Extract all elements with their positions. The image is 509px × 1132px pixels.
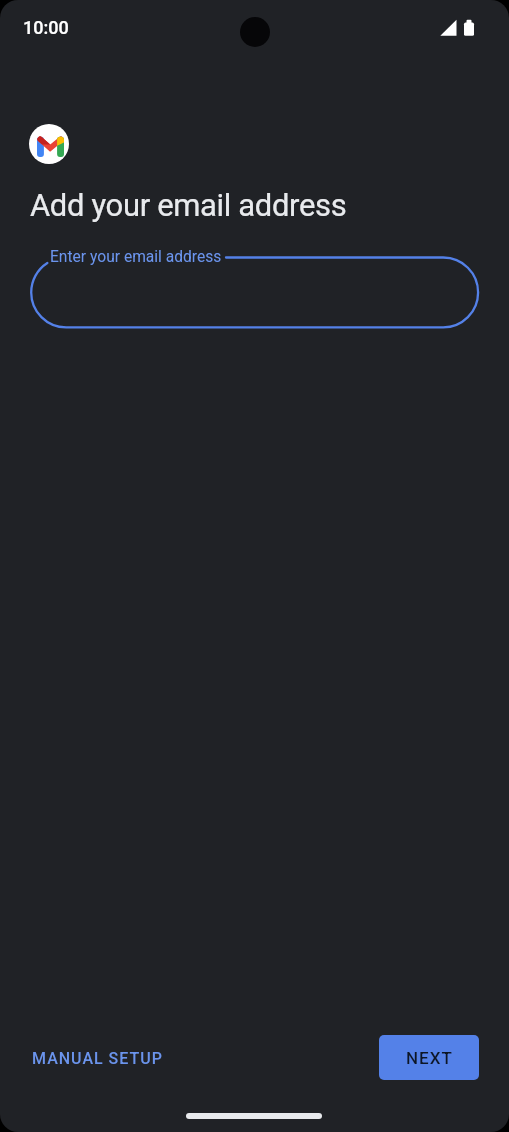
staticText: Enter your email address (50, 248, 222, 266)
other: Signal and battery status (436, 19, 480, 37)
staticText: Add your email address (30, 187, 347, 223)
button[interactable]: MANUAL SETUP (20, 1040, 175, 1077)
button[interactable]: NEXT (379, 1035, 479, 1080)
button[interactable]: Enter your email address (29, 256, 479, 329)
staticText: MANUAL SETUP (32, 1049, 163, 1068)
staticText: NEXT (406, 1048, 453, 1068)
staticText: 10:00 (23, 17, 69, 38)
